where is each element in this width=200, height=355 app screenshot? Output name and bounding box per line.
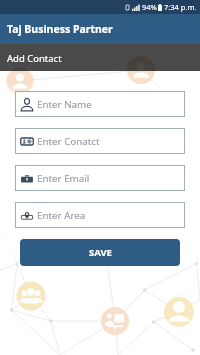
button[interactable]: Taj Business Partner [0,14,200,44]
staticText: Enter Name [37,98,92,111]
button[interactable]: SAVE [20,239,180,266]
staticText: 94% [142,2,157,12]
staticText: Enter Conatct [37,135,100,148]
button[interactable]: Enter Area [15,202,185,228]
button[interactable]: Enter Email [15,165,185,191]
button[interactable]: Enter Conatct [15,128,185,154]
staticText: 7:34 p.m. [164,2,197,12]
staticText: Enter Area [37,209,86,222]
staticText: Taj Business Partner [7,22,113,36]
button[interactable]: Enter Name [15,91,185,117]
staticText: Enter Email [37,172,90,185]
staticText: SAVE [89,246,112,259]
staticText: Add Contact [7,52,62,65]
